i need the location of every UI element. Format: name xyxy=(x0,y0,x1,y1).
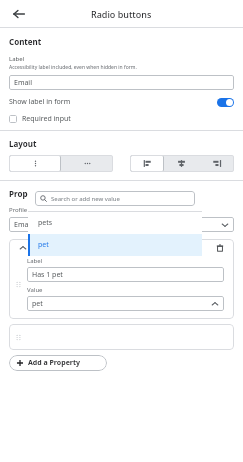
button[interactable]: Layout option xyxy=(61,155,113,172)
staticText: pet xyxy=(32,299,43,309)
button[interactable]: Layout option xyxy=(199,155,234,172)
button[interactable]: Search or add new value xyxy=(35,191,195,206)
button[interactable] xyxy=(9,324,234,350)
staticText: Value xyxy=(27,286,43,294)
staticText: Label xyxy=(9,55,25,63)
button[interactable]: Show label in form xyxy=(9,97,234,107)
button[interactable]: pet xyxy=(27,296,224,311)
staticText: Profile property xyxy=(9,206,54,214)
staticText: Email xyxy=(14,220,32,230)
button[interactable]: Required input xyxy=(9,114,71,124)
button[interactable]: Show label in form toggle xyxy=(217,98,234,107)
staticText: pets xyxy=(38,218,53,228)
staticText: Radio buttons xyxy=(91,8,152,20)
staticText: Email xyxy=(14,78,32,88)
staticText: Search or add new value xyxy=(51,195,120,203)
button[interactable]: Layout option xyxy=(164,155,199,172)
staticText: Label xyxy=(27,257,43,265)
button[interactable]: Email xyxy=(9,75,234,90)
staticText: Property Options xyxy=(9,188,78,199)
button[interactable]: Layout option xyxy=(130,155,164,172)
button[interactable]: Property xyxy=(9,239,234,257)
staticText: Required input xyxy=(22,114,71,124)
button[interactable]: pet xyxy=(28,234,202,256)
button[interactable]: Delete property xyxy=(213,241,227,255)
staticText: pet xyxy=(38,240,49,250)
staticText: Content xyxy=(9,36,42,47)
button[interactable]: Add a Property xyxy=(9,355,107,371)
button[interactable]: Layout option xyxy=(9,155,61,172)
staticText: Has 1 pet xyxy=(32,270,63,280)
button[interactable]: Email xyxy=(9,217,234,232)
staticText: Property xyxy=(34,243,65,253)
staticText: Layout xyxy=(9,138,37,149)
button[interactable]: Back xyxy=(8,3,30,25)
staticText: Show label in form xyxy=(9,97,217,107)
button[interactable]: pets xyxy=(28,212,202,234)
staticText: Add a Property xyxy=(28,358,81,368)
button[interactable]: Has 1 pet xyxy=(27,267,224,282)
staticText: Accessibility label included, even when … xyxy=(9,64,137,71)
